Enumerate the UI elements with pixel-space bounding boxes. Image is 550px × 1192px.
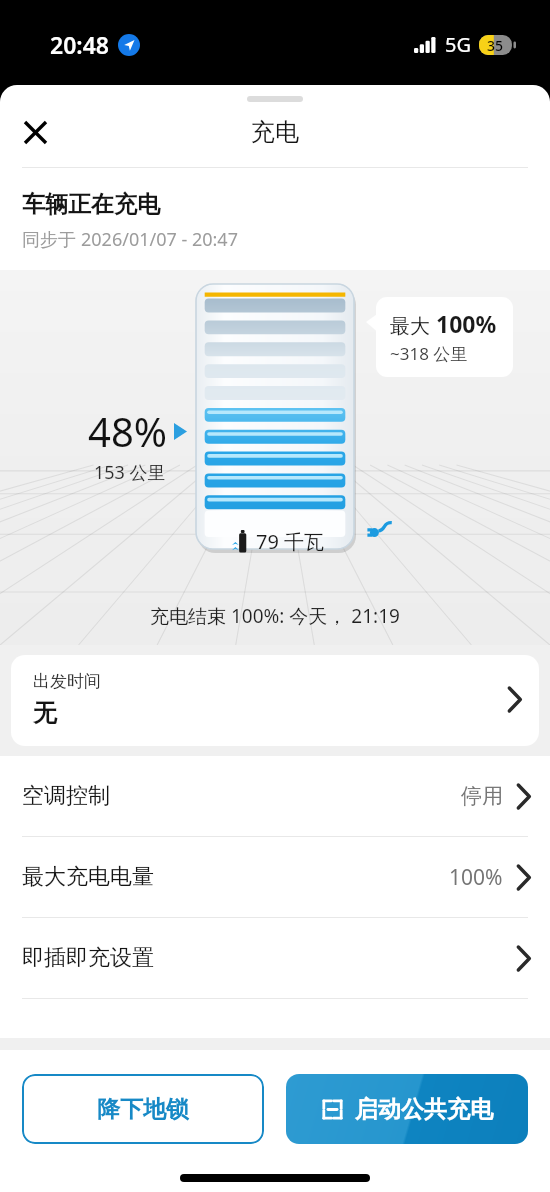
button[interactable]: Close xyxy=(14,111,56,153)
staticText: ~318 公里 xyxy=(390,342,468,365)
button[interactable]: 空调控制 xyxy=(0,756,550,836)
button[interactable]: 出发时间 xyxy=(11,655,539,746)
staticText: 即插即充设置 xyxy=(22,944,517,972)
staticText: 153 公里 xyxy=(94,460,166,485)
staticText: 启动公共充电 xyxy=(355,1095,493,1124)
staticText: 同步于 xyxy=(22,227,81,252)
staticText: 2026/01/07 - 20:47 xyxy=(81,227,238,252)
staticText: 无 xyxy=(33,698,57,728)
button[interactable]: 最大充电电量 xyxy=(0,837,550,917)
staticText: 48% xyxy=(88,404,167,458)
staticText: 车辆正在充电 xyxy=(22,190,160,219)
staticText: 充电 xyxy=(251,117,299,147)
staticText: 降下地锁 xyxy=(97,1095,189,1124)
staticText: 35 xyxy=(487,36,504,55)
staticText: 5G xyxy=(445,31,471,58)
button[interactable]: 即插即充设置 xyxy=(0,918,550,998)
staticText: 最大 xyxy=(390,312,436,339)
staticText: 20:48 xyxy=(50,29,109,60)
staticText: 空调控制 xyxy=(22,782,461,810)
staticText: 79 千瓦 xyxy=(256,528,325,555)
button[interactable]: 启动公共充电 xyxy=(286,1074,528,1144)
staticText: 停用 xyxy=(461,783,503,809)
staticText: 最大充电电量 xyxy=(22,863,449,891)
button[interactable]: 降下地锁 xyxy=(22,1074,264,1144)
staticText: 100% xyxy=(436,308,497,339)
staticText: 出发时间 xyxy=(33,671,101,692)
staticText: 100% xyxy=(449,863,503,892)
staticText: 充电结束 100%: 今天， 21:19 xyxy=(150,603,400,629)
